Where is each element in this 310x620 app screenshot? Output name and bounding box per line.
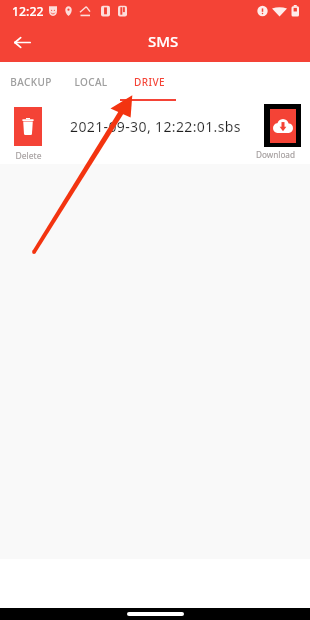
button[interactable]: Download (264, 104, 301, 147)
staticText: LOCAL (74, 75, 108, 89)
staticText: Delete (13, 150, 44, 162)
button[interactable]: Back (6, 26, 38, 58)
button[interactable]: DRIVE (120, 62, 178, 101)
staticText: 12:22 (12, 3, 44, 20)
button[interactable]: Delete (14, 107, 42, 146)
staticText: Download (255, 149, 296, 160)
button[interactable]: LOCAL (62, 62, 120, 101)
staticText: 2021-09-30, 12:22:01.sbs (70, 117, 241, 136)
staticText: BACKUP (10, 75, 52, 89)
staticText: DRIVE (134, 75, 165, 89)
button[interactable]: BACKUP (0, 62, 62, 101)
staticText: SMS (148, 31, 179, 51)
